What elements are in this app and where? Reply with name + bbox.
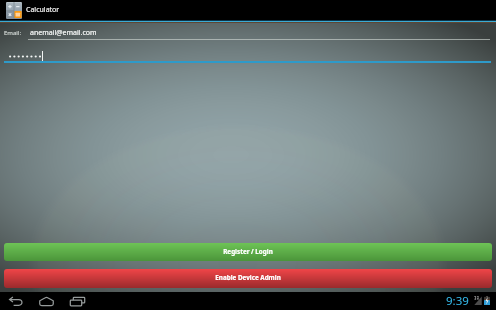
other: Signal strength (471, 296, 482, 305)
button[interactable]: Back (1, 292, 30, 310)
button[interactable] (0, 40, 496, 63)
button[interactable]: Enable Device Admin (4, 269, 492, 288)
button[interactable]: Register / Login (4, 243, 492, 261)
staticText: Email: (4, 29, 22, 37)
staticText: Register / Login (223, 247, 273, 256)
button[interactable]: Recent apps (63, 292, 92, 310)
staticText: Calculator (26, 5, 60, 15)
staticText: 9:39 (446, 293, 469, 309)
other: Battery charging (484, 296, 490, 305)
staticText: anemail@email.com (30, 28, 97, 38)
staticText: Enable Device Admin (215, 273, 281, 282)
button[interactable]: Email: (0, 23, 496, 40)
button[interactable]: Home (32, 292, 61, 310)
